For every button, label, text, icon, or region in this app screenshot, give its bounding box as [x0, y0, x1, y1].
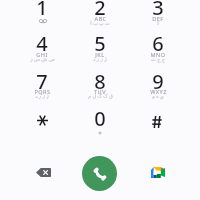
button[interactable]: Video call: [141, 156, 174, 189]
button[interactable]: [130, 0, 186, 27]
staticText: 7: [36, 68, 48, 92]
staticText: 8: [94, 68, 106, 92]
button[interactable]: [72, 104, 128, 138]
staticText: DEF: [152, 15, 164, 23]
staticText: ص ش س ز: [30, 56, 55, 63]
staticText: PQRS: [34, 88, 51, 96]
staticText: TUV: [94, 88, 106, 96]
button[interactable]: [14, 104, 70, 138]
staticText: 9: [152, 68, 164, 92]
button[interactable]: [72, 67, 128, 101]
staticText: ت پ ب ا: [90, 20, 110, 27]
button[interactable]: [130, 104, 186, 138]
button[interactable]: [14, 0, 70, 27]
staticText: WXYZ: [150, 88, 167, 96]
button[interactable]: [130, 29, 186, 63]
button[interactable]: Call: [82, 156, 117, 191]
staticText: GHI: [36, 51, 48, 59]
button[interactable]: [14, 67, 70, 101]
staticText: ا: [157, 20, 159, 26]
staticText: ژ ز ر د: [35, 93, 49, 100]
staticText: ژ ز ر ذ: [93, 56, 107, 63]
button[interactable]: [72, 29, 128, 63]
staticText: 1: [36, 0, 48, 18]
staticText: ی ه و: [152, 93, 164, 100]
staticText: 6: [152, 30, 164, 54]
button[interactable]: [14, 29, 70, 63]
staticText: ق ک گ ل م: [88, 93, 113, 100]
button[interactable]: Backspace: [27, 156, 60, 189]
staticText: 4: [36, 30, 48, 54]
staticText: ABC: [94, 15, 107, 23]
staticText: JKL: [95, 51, 105, 59]
staticText: 3: [152, 0, 164, 18]
staticText: 0: [94, 105, 106, 129]
staticText: 2: [94, 0, 106, 18]
staticText: 5: [94, 30, 106, 54]
staticText: ح ج ث: [151, 56, 165, 63]
button[interactable]: [72, 0, 128, 27]
button[interactable]: [130, 67, 186, 101]
staticText: MNO: [150, 51, 166, 59]
